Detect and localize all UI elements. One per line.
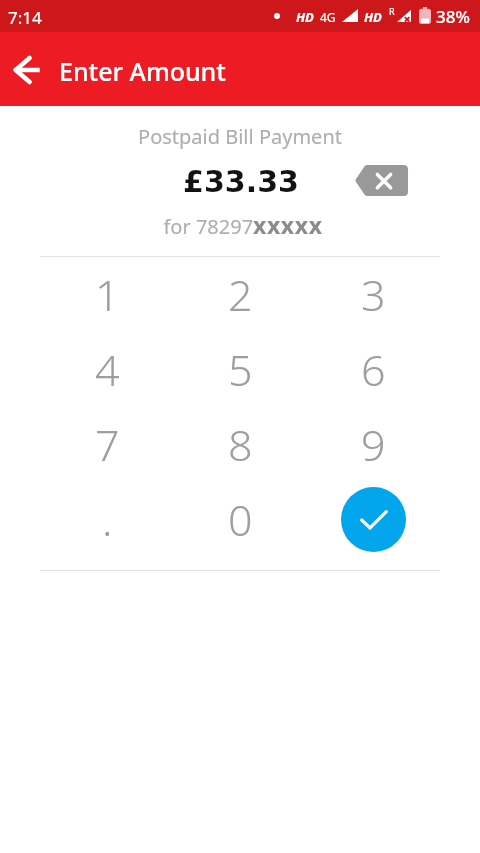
staticText: 2 [228, 265, 253, 324]
button[interactable]: Confirm amount [341, 487, 406, 552]
button[interactable]: 2 [174, 257, 307, 332]
button[interactable]: 5 [174, 332, 307, 407]
button[interactable]: Back [7, 51, 48, 89]
staticText: HD [296, 8, 314, 26]
button[interactable]: 1 [40, 257, 174, 332]
staticText: HD [364, 8, 382, 26]
staticText: 9 [361, 415, 386, 474]
staticText: 38% [436, 5, 470, 28]
staticText: Postpaid Bill Payment [0, 123, 480, 150]
staticText: R [389, 5, 395, 17]
staticText: £33.33 [1, 164, 480, 199]
staticText: 3 [361, 265, 386, 324]
button[interactable]: 6 [307, 332, 440, 407]
staticText: 0 [228, 490, 253, 549]
button[interactable]: 3 [307, 257, 440, 332]
button[interactable]: 7 [40, 407, 174, 482]
button[interactable]: 0 [174, 482, 307, 557]
button[interactable]: 9 [307, 407, 440, 482]
staticText: 4G [320, 9, 336, 25]
staticText: 7:14 [8, 6, 42, 29]
button[interactable]: 8 [174, 407, 307, 482]
staticText: 5 [228, 340, 253, 399]
button[interactable]: Backspace [355, 165, 408, 196]
staticText: 8 [228, 415, 253, 474]
staticText: 7 [95, 415, 120, 474]
staticText: 1 [95, 265, 120, 324]
staticText: 4 [95, 340, 120, 399]
staticText: for 78297xxxxx [3, 209, 480, 240]
button[interactable]: . [40, 482, 174, 557]
staticText: . [102, 490, 113, 549]
staticText: 6 [361, 340, 386, 399]
button[interactable]: 4 [40, 332, 174, 407]
staticText: Enter Amount [59, 54, 226, 88]
